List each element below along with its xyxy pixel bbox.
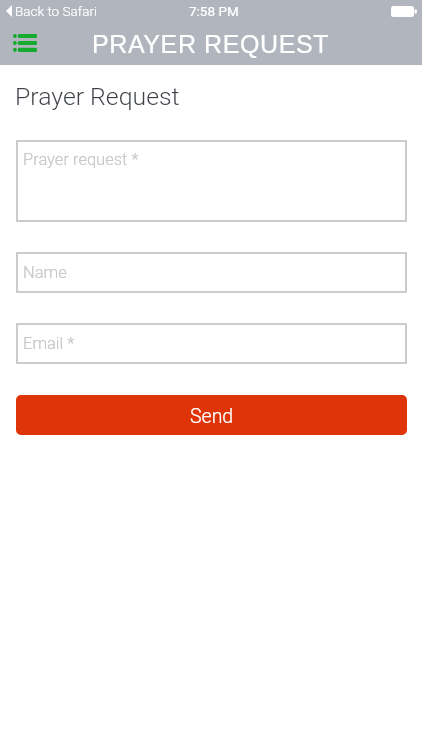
staticText: Send: [190, 405, 234, 428]
button[interactable]: Name: [16, 252, 407, 293]
staticText: 7:58 PM: [189, 3, 239, 19]
staticText: Prayer Request: [15, 82, 180, 111]
staticText: Back to Safari: [15, 3, 97, 19]
staticText: Name: [23, 263, 67, 282]
button[interactable]: Email *: [16, 323, 407, 364]
button[interactable]: Send: [16, 395, 407, 435]
staticText: Prayer request *: [23, 150, 139, 169]
staticText: Email *: [23, 334, 75, 353]
staticText: PRAYER REQUEST: [92, 30, 330, 58]
button[interactable]: Prayer request *: [16, 140, 407, 222]
button[interactable]: Menu: [7, 29, 43, 56]
